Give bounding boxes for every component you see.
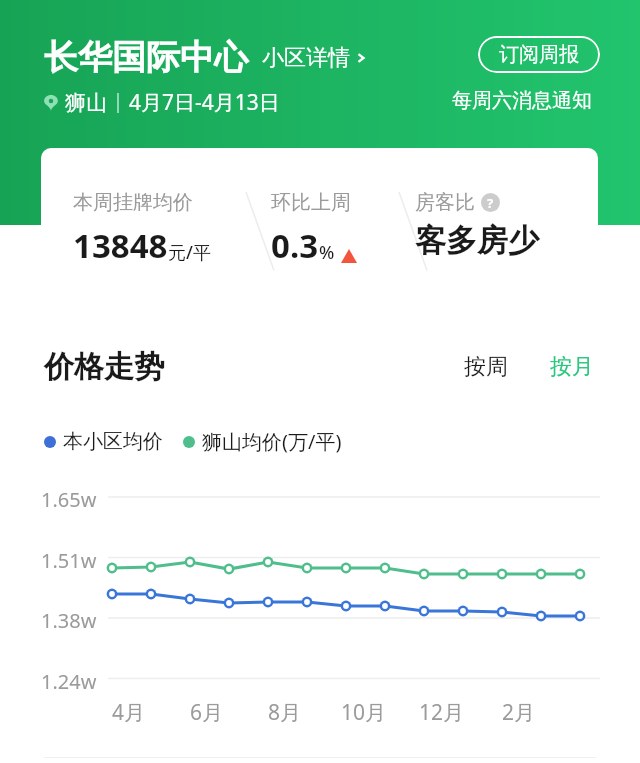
button[interactable]: 按月 [544, 349, 600, 385]
staticText: 12月 [419, 698, 465, 727]
staticText: 1.38w [41, 607, 97, 634]
staticText: 本小区均价 [63, 429, 163, 454]
staticText: 2月 [502, 698, 536, 727]
staticText: % [319, 240, 335, 265]
staticText: 1.24w [41, 668, 97, 695]
staticText: 按周 [464, 353, 508, 381]
button[interactable]: 本周挂牌均价 [41, 148, 598, 305]
staticText: 狮山 [65, 90, 107, 116]
staticText: 0.3 [271, 223, 319, 268]
staticText: 元/平 [168, 240, 211, 265]
staticText: 房客比 [415, 190, 475, 215]
staticText: 8月 [268, 698, 302, 727]
staticText: 1.65w [41, 486, 97, 513]
button[interactable]: 小区详情 [262, 40, 368, 76]
staticText: 客多房少 [415, 221, 539, 260]
staticText: 环比上周 [271, 190, 351, 215]
staticText: 狮山均价(万/平) [202, 428, 342, 455]
staticText: 本周挂牌均价 [73, 190, 193, 215]
staticText: ? [487, 194, 494, 212]
staticText: 6月 [190, 698, 224, 727]
staticText: 1.51w [41, 547, 97, 574]
staticText: 长华国际中心 [44, 36, 248, 79]
staticText: 4月7日-4月13日 [129, 88, 280, 117]
staticText: 每周六消息通知 [452, 88, 592, 113]
button[interactable]: 帮助说明 [481, 193, 500, 212]
staticText: 4月 [112, 698, 146, 727]
button[interactable]: 订阅周报 [478, 36, 600, 73]
staticText: 按月 [550, 353, 594, 381]
staticText: 13848 [73, 223, 168, 268]
button[interactable]: 按周 [458, 349, 514, 385]
staticText: 小区详情 [262, 44, 350, 72]
staticText: 价格走势 [44, 348, 164, 386]
staticText: 10月 [341, 698, 387, 727]
staticText: 订阅周报 [499, 42, 579, 67]
